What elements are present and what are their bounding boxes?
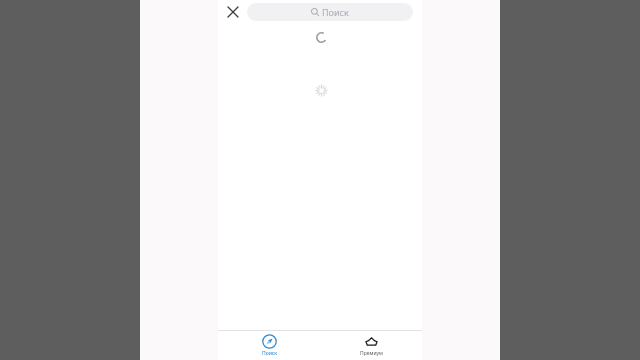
staticText: Поиск [322, 6, 349, 18]
button[interactable]: Close [222, 1, 244, 23]
button[interactable]: Поиск [247, 3, 413, 21]
button[interactable]: Поиск [239, 331, 299, 360]
staticText: Премиум [360, 350, 383, 357]
staticText: Поиск [262, 350, 277, 357]
button[interactable]: Премиум [341, 331, 401, 360]
